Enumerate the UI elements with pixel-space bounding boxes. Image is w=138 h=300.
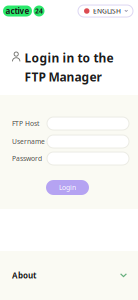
staticText: ENGLISH — [93, 7, 121, 15]
button[interactable]: active24 home — [3, 5, 44, 16]
button[interactable]: About — [0, 251, 138, 300]
staticText: About — [12, 270, 36, 281]
staticText: FTP Host — [12, 119, 39, 128]
staticText: Username — [12, 137, 45, 146]
staticText: FTP Manager — [24, 69, 101, 85]
staticText: Password — [12, 154, 42, 163]
staticText: active — [5, 6, 29, 16]
staticText: Login — [59, 183, 76, 192]
button[interactable]: ENGLISH — [78, 5, 133, 17]
staticText: 24 — [35, 7, 43, 15]
staticText: Login in to the — [24, 50, 113, 66]
button[interactable]: Login — [46, 180, 89, 195]
